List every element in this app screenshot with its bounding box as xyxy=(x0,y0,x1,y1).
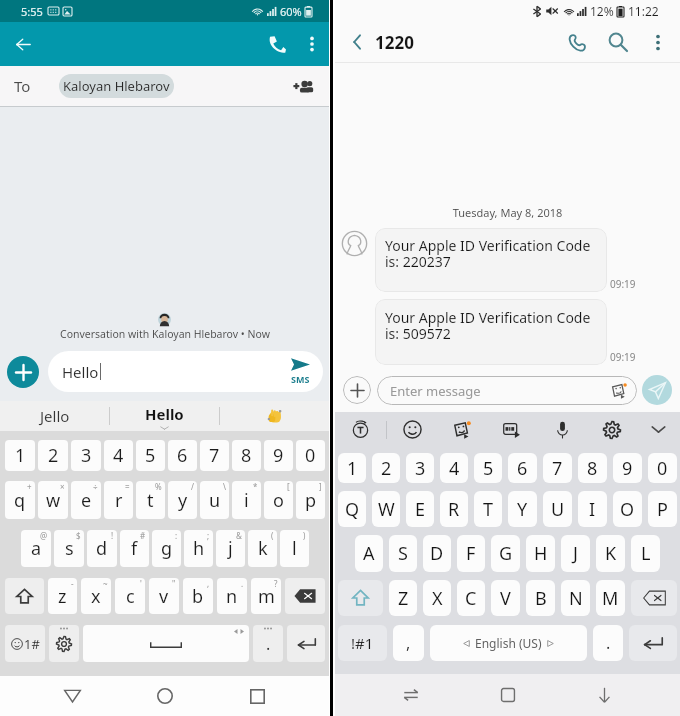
button[interactable]: 8 xyxy=(232,440,261,471)
button[interactable]: U xyxy=(543,491,572,527)
button[interactable]: / xyxy=(168,481,197,519)
button[interactable]: 8 xyxy=(578,453,607,483)
button[interactable]: Y xyxy=(508,491,537,527)
button[interactable]: . xyxy=(217,578,247,614)
button[interactable]: ? xyxy=(251,578,281,614)
button[interactable]: Hide keyboard xyxy=(584,675,624,715)
button[interactable]: Enter message xyxy=(377,376,637,405)
button[interactable]: 5 xyxy=(136,440,165,471)
button[interactable]: Home xyxy=(488,675,528,715)
button[interactable]: Search xyxy=(602,26,634,58)
button[interactable]: Home xyxy=(145,676,185,716)
button[interactable]: More options xyxy=(644,28,672,56)
button[interactable]: 0 xyxy=(648,453,677,483)
button[interactable]: O xyxy=(613,491,642,527)
button[interactable]: ÷ xyxy=(71,481,101,519)
button[interactable]: ' xyxy=(115,578,145,614)
button[interactable]: E xyxy=(406,491,434,527)
button[interactable]: 2 xyxy=(38,440,68,471)
button[interactable]: . xyxy=(593,625,623,661)
button[interactable]: X xyxy=(423,580,451,616)
button[interactable]: ~ xyxy=(81,578,111,614)
button[interactable]: R xyxy=(440,491,468,527)
button[interactable]: Shift xyxy=(338,580,383,616)
button[interactable]: GIF xyxy=(487,412,537,447)
button[interactable]: Add people xyxy=(288,71,318,101)
button[interactable]: W xyxy=(372,491,400,527)
button[interactable]: F xyxy=(457,535,485,572)
button[interactable]: Emoji xyxy=(387,412,437,447)
button[interactable]: \ xyxy=(200,481,229,519)
button[interactable]: Hello xyxy=(110,401,219,431)
button[interactable]: % xyxy=(136,481,165,519)
button[interactable]: , xyxy=(393,625,424,661)
button[interactable]: Space xyxy=(83,625,249,662)
button[interactable]: Hello xyxy=(48,351,323,392)
button[interactable]: Shift xyxy=(5,578,44,614)
button[interactable]: * xyxy=(232,481,261,519)
button[interactable]: 1# xyxy=(5,625,45,662)
button[interactable]: P xyxy=(648,491,677,527)
button[interactable]: " xyxy=(149,578,179,614)
button[interactable]: G xyxy=(491,535,520,572)
button[interactable]: V xyxy=(491,580,520,616)
button[interactable]: Voice input xyxy=(537,412,587,447)
button[interactable]: Settings xyxy=(587,412,637,447)
button[interactable]: Your Apple ID Verification Code is: 5095… xyxy=(375,299,607,365)
button[interactable]: 1 xyxy=(338,453,366,483)
button[interactable]: S xyxy=(389,535,417,572)
button[interactable]: Stickers xyxy=(437,412,487,447)
button[interactable] xyxy=(220,401,329,431)
button[interactable]: Enter xyxy=(287,625,325,662)
button[interactable]: Backspace xyxy=(285,578,325,614)
button[interactable]: Attach xyxy=(7,356,39,388)
button[interactable]: N xyxy=(561,580,590,616)
button[interactable]: 4 xyxy=(104,440,133,471)
button[interactable]: Collapse xyxy=(637,412,680,447)
button[interactable]: ( xyxy=(248,530,277,567)
button[interactable]: 6 xyxy=(168,440,197,471)
button[interactable]: Kaloyan Hlebarov xyxy=(59,74,174,98)
button[interactable]: Send xyxy=(642,375,672,405)
button[interactable]: 1 xyxy=(5,440,35,471)
button[interactable]: C xyxy=(457,580,485,616)
button[interactable]: L xyxy=(631,535,660,572)
button[interactable]: B xyxy=(526,580,555,616)
button[interactable]: Recents xyxy=(237,676,277,716)
button[interactable]: Call xyxy=(561,26,593,58)
button[interactable]: Back xyxy=(52,676,92,716)
button[interactable]: 2 xyxy=(372,453,400,483)
button[interactable]: Recents xyxy=(391,675,431,715)
button[interactable]: = xyxy=(104,481,133,519)
button[interactable]: Enter xyxy=(629,625,677,661)
button[interactable]: Call xyxy=(254,27,288,61)
button[interactable]: . xyxy=(253,625,283,662)
button[interactable]: ) xyxy=(280,530,309,567)
button[interactable]: Add attachment xyxy=(343,376,371,404)
button[interactable]: M xyxy=(596,580,625,616)
button[interactable]: Backspace xyxy=(631,580,677,616)
button[interactable]: ; xyxy=(184,530,213,567)
button[interactable]: Back xyxy=(343,28,371,56)
button[interactable]: 3 xyxy=(71,440,101,471)
button[interactable]: : xyxy=(152,530,181,567)
button[interactable]: @ xyxy=(21,530,51,567)
button[interactable]: # xyxy=(120,530,149,567)
button[interactable]: Q xyxy=(338,491,366,527)
button[interactable]: ] xyxy=(296,481,325,519)
button[interactable]: - xyxy=(48,578,77,614)
button[interactable]: × xyxy=(38,481,68,519)
button[interactable]: T xyxy=(474,491,502,527)
button[interactable]: 7 xyxy=(543,453,572,483)
button[interactable]: 3 xyxy=(406,453,434,483)
button[interactable]: Your Apple ID Verification Code is: 2202… xyxy=(375,228,607,292)
button[interactable]: & xyxy=(216,530,245,567)
button[interactable]: 9 xyxy=(264,440,293,471)
button[interactable]: Text tools xyxy=(335,412,386,447)
button[interactable]: Space xyxy=(430,625,587,661)
button[interactable]: I xyxy=(578,491,607,527)
button[interactable]: Back xyxy=(7,28,39,60)
button[interactable]: More options xyxy=(296,28,328,60)
button[interactable]: 7 xyxy=(200,440,229,471)
button[interactable]: 0 xyxy=(296,440,325,471)
